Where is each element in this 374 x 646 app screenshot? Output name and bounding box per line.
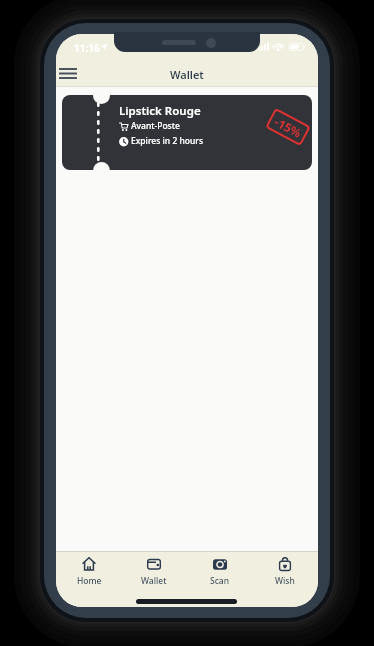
- button[interactable]: [59, 68, 77, 79]
- button[interactable]: Scan: [196, 553, 244, 587]
- staticText: Lipstick Rouge: [119, 103, 201, 119]
- staticText: Wish: [275, 575, 295, 587]
- staticText: Expires in 2 hours: [131, 135, 204, 147]
- button[interactable]: Wish: [261, 553, 309, 587]
- button[interactable]: Wallet: [130, 553, 178, 587]
- staticText: 11:16: [74, 41, 100, 55]
- staticText: Avant-Poste: [131, 120, 180, 132]
- staticText: Wallet: [170, 67, 204, 81]
- staticText: Scan: [210, 575, 230, 587]
- button[interactable]: Home: [65, 553, 113, 587]
- staticText: Home: [77, 575, 102, 587]
- staticText: Wallet: [141, 575, 167, 587]
- staticText: -15%: [272, 113, 305, 141]
- button[interactable]: Lipstick Rouge: [62, 95, 312, 170]
